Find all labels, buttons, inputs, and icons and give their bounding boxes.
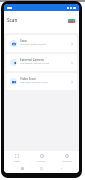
staticText: Scan [7,17,18,23]
staticText: External Camera [20,58,44,62]
button[interactable]: Video Scan [6,73,77,90]
staticText: Scan [20,39,27,43]
staticText: History [37,159,46,162]
staticText: Scan using the video mode [20,81,48,84]
staticText: Use your device's camera [20,43,46,46]
button[interactable]: Scan [4,151,29,164]
staticText: Use external camera to scan [20,62,50,65]
button[interactable]: History [29,151,54,164]
button[interactable]: External Camera [6,54,77,71]
staticText: Settings [62,159,72,162]
button[interactable]: Settings [54,151,79,164]
button[interactable]: Upgrade to Pro [68,19,75,23]
button[interactable]: Scan [6,35,77,52]
staticText: Video Scan [20,77,36,81]
other: Home [40,167,43,170]
other: Back [60,167,63,170]
other: Recents [21,167,24,170]
staticText: Scan [14,159,20,162]
